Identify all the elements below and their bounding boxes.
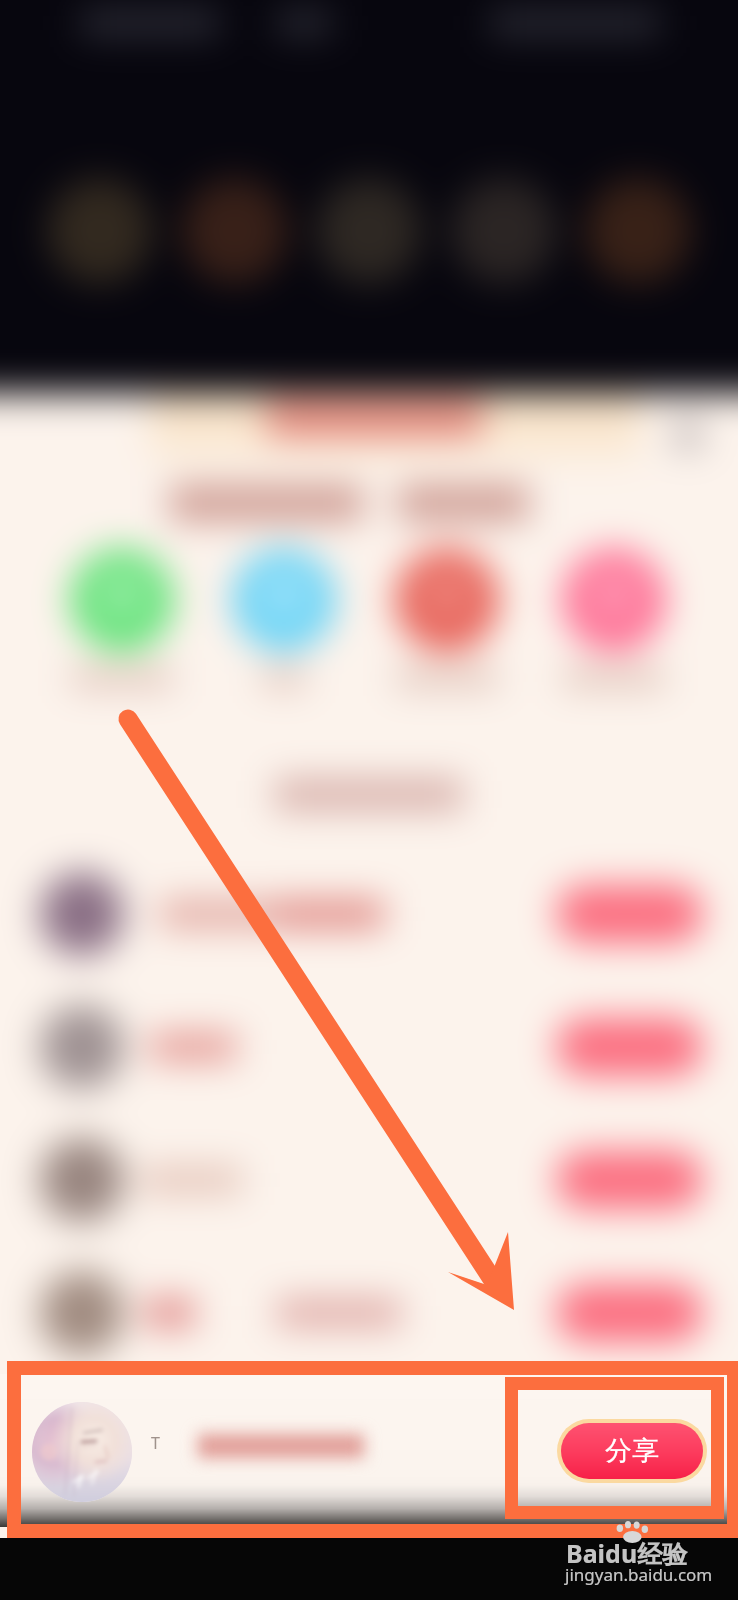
button[interactable] xyxy=(0,1246,738,1379)
staticText: Baidu经验 xyxy=(566,1536,688,1570)
staticText: jingyan.baidu.com xyxy=(565,1563,713,1586)
button[interactable]: Share target xyxy=(233,549,335,691)
staticText: T xyxy=(151,1432,160,1454)
button[interactable]: Share target xyxy=(71,549,173,691)
button[interactable]: Share target xyxy=(563,549,665,691)
staticText: 分享 xyxy=(605,1434,659,1468)
button[interactable] xyxy=(0,847,738,980)
button[interactable]: 分享 xyxy=(561,1423,703,1479)
button[interactable] xyxy=(0,1113,738,1246)
button[interactable]: Share target xyxy=(396,549,498,691)
button[interactable] xyxy=(0,980,738,1113)
